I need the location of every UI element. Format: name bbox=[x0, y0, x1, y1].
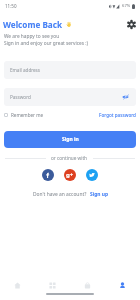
staticText: Sign up bbox=[90, 191, 108, 198]
staticText: g+ bbox=[66, 171, 74, 179]
button[interactable]: Twitter bbox=[86, 169, 98, 181]
button[interactable]: Sign in bbox=[4, 131, 136, 148]
staticText: Don't have an account? bbox=[33, 191, 87, 198]
button[interactable]: Home bbox=[0, 269, 35, 295]
staticText: or continue with bbox=[51, 155, 88, 161]
button[interactable]: Settings bbox=[125, 18, 137, 30]
staticText: 11:50 bbox=[5, 3, 17, 9]
button[interactable]: Show password bbox=[120, 92, 130, 102]
staticText: Sign in and enjoy our great services :) bbox=[4, 40, 88, 47]
button[interactable]: Orders bbox=[70, 269, 105, 295]
button[interactable]: Forgot password bbox=[99, 111, 136, 119]
button[interactable]: Sign up bbox=[90, 191, 108, 198]
button[interactable]: Remember me bbox=[4, 111, 44, 119]
staticText: 67% bbox=[122, 3, 131, 9]
button[interactable]: Profile bbox=[105, 269, 140, 295]
button[interactable]: Google plus bbox=[64, 169, 76, 181]
staticText: Email address bbox=[10, 67, 41, 73]
staticText: Welcome Back bbox=[3, 19, 63, 30]
button[interactable]: Facebook bbox=[42, 169, 54, 181]
staticText: Forgot password bbox=[99, 112, 136, 118]
button[interactable]: Categories bbox=[35, 269, 70, 295]
staticText: Remember me bbox=[11, 112, 44, 118]
button[interactable]: Email address bbox=[4, 61, 136, 79]
staticText: Sign in bbox=[62, 136, 79, 143]
button[interactable]: Password bbox=[4, 88, 136, 106]
staticText: Password bbox=[10, 94, 31, 100]
staticText: We are happy to see you bbox=[4, 33, 60, 40]
